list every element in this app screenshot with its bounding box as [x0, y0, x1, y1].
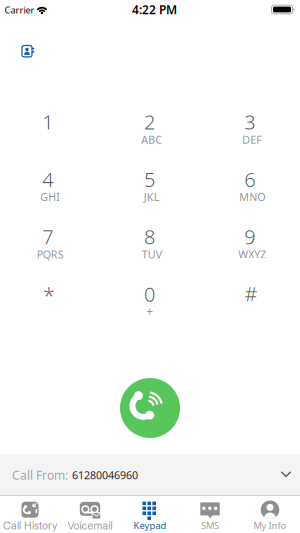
- staticText: SMS: [201, 519, 219, 532]
- button[interactable]: 1: [2, 104, 94, 154]
- staticText: #: [244, 280, 257, 307]
- staticText: +: [146, 303, 153, 319]
- staticText: 7: [42, 223, 53, 250]
- staticText: 8: [144, 223, 155, 250]
- staticText: 4:22 PM: [132, 1, 177, 17]
- staticText: PQRS: [37, 247, 64, 261]
- staticText: ABC: [141, 132, 162, 147]
- staticText: 4: [42, 166, 53, 192]
- staticText: Carrier: [4, 4, 34, 16]
- button[interactable]: 8: [103, 219, 195, 269]
- button[interactable]: My Info: [240, 496, 300, 532]
- staticText: 2: [144, 108, 155, 135]
- staticText: Call From:: [12, 467, 68, 483]
- button[interactable]: #: [204, 276, 296, 326]
- staticText: JKL: [144, 190, 160, 204]
- staticText: 3: [244, 108, 255, 135]
- button[interactable]: Call From: 61280046960: [0, 454, 300, 496]
- button[interactable]: 4: [2, 162, 94, 212]
- staticText: TUV: [142, 247, 162, 261]
- button[interactable]: 0: [103, 276, 195, 326]
- staticText: 0: [144, 281, 155, 307]
- button[interactable]: Voicemail: [60, 496, 120, 532]
- button[interactable]: 7: [2, 219, 94, 269]
- staticText: DEF: [242, 132, 262, 147]
- staticText: *: [43, 281, 55, 309]
- button[interactable]: 3: [204, 104, 296, 154]
- button[interactable]: Contacts: [20, 43, 36, 59]
- button[interactable]: Keypad: [120, 496, 180, 532]
- staticText: 9: [244, 223, 255, 250]
- staticText: Voicemail: [67, 519, 112, 532]
- button[interactable]: 6: [204, 162, 296, 212]
- staticText: MNO: [239, 190, 265, 204]
- staticText: Keypad: [133, 519, 166, 532]
- staticText: 1: [42, 108, 53, 135]
- button[interactable]: 9: [204, 219, 296, 269]
- staticText: 61280046960: [72, 468, 138, 482]
- staticText: GHI: [40, 190, 60, 204]
- button[interactable]: Call: [120, 378, 180, 438]
- button[interactable]: 2: [103, 104, 195, 154]
- staticText: Call History: [3, 519, 57, 532]
- staticText: 5: [144, 166, 155, 192]
- button[interactable]: *: [2, 276, 94, 326]
- button[interactable]: Call History: [0, 496, 60, 532]
- staticText: 6: [244, 166, 255, 192]
- staticText: My Info: [253, 519, 286, 532]
- button[interactable]: SMS: [180, 496, 240, 532]
- staticText: WXYZ: [238, 247, 266, 261]
- button[interactable]: 5: [103, 162, 195, 212]
